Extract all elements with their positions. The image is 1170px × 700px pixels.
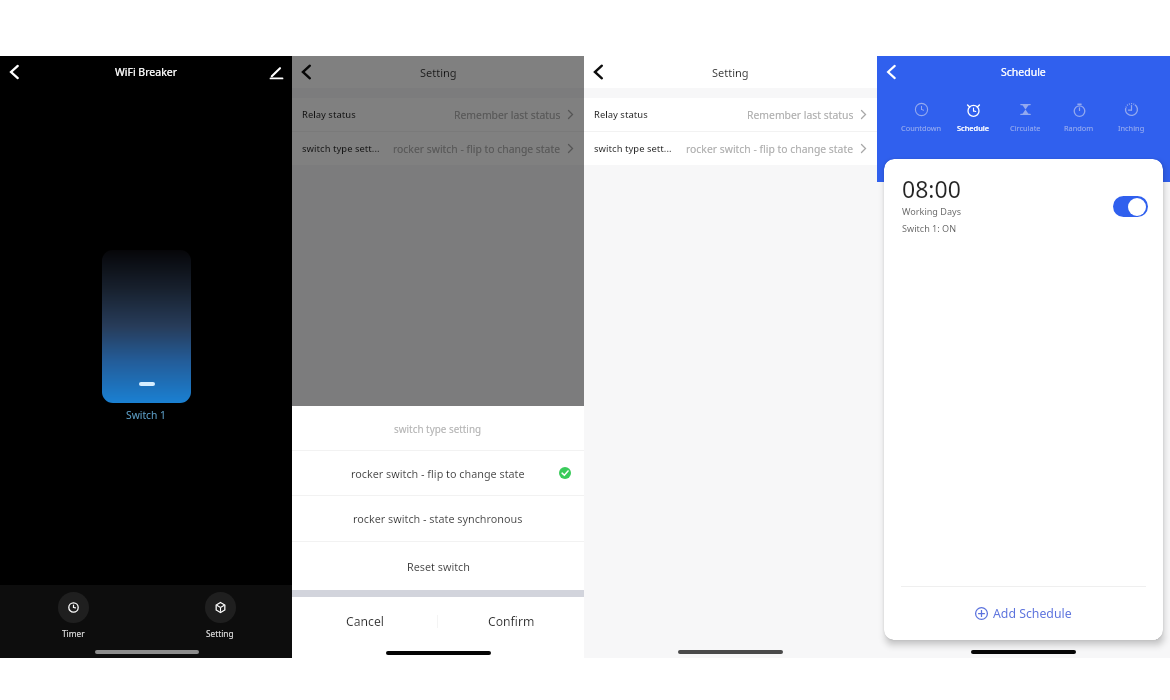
button[interactable]: Back [292,56,326,88]
button[interactable]: Circulate [1009,100,1042,133]
button[interactable]: Add Schedule [884,587,1163,640]
staticText: Remember last status [747,108,854,122]
button[interactable]: Timer [44,591,102,640]
button[interactable]: Back [0,56,34,88]
staticText: Random [1064,123,1094,133]
staticText: Relay status [594,108,648,121]
staticText: Setting [712,65,749,80]
staticText: Switch 1 [126,408,166,422]
staticText: Working Days [902,205,962,217]
button[interactable]: Schedule enabled toggle [1113,196,1148,217]
button[interactable]: Random [1063,100,1095,133]
staticText: Setting [206,628,234,639]
staticText: Confirm [488,613,535,630]
staticText: rocker switch - state synchronous [353,511,523,526]
button[interactable]: Setting [191,591,249,640]
staticText: Remember last status [454,108,561,122]
staticText: Switch 1: ON [902,222,957,234]
button[interactable]: Cancel [292,597,437,645]
button[interactable]: Countdown [900,100,943,133]
button[interactable]: Confirm [438,597,584,645]
staticText: Timer [62,628,85,639]
staticText: Schedule [1001,65,1046,79]
button[interactable]: Reset switch [292,542,584,590]
staticText: WiFi Breaker [115,65,177,79]
button[interactable]: Relay status [292,98,584,131]
button[interactable]: Schedule [956,100,991,133]
button[interactable]: switch type sett... [292,132,584,165]
staticText: Reset switch [407,559,470,574]
staticText: Relay status [302,108,356,121]
staticText: Add Schedule [993,605,1072,622]
button[interactable]: Back [584,56,618,88]
staticText: Circulate [1010,123,1041,133]
staticText: switch type setting [394,422,482,435]
button[interactable]: Back [877,56,911,88]
staticText: switch type sett... [594,142,672,155]
staticText: Cancel [346,613,384,630]
staticText: Countdown [901,123,942,133]
button[interactable]: Switch 1 toggle [102,250,191,403]
staticText: 08:00 [902,173,961,204]
button[interactable]: 08:00 [884,159,1163,245]
staticText: rocker switch - flip to change state [351,466,525,481]
button[interactable]: rocker switch - state synchronous [292,496,584,541]
staticText: Schedule [957,123,990,133]
staticText: Setting [420,65,457,80]
staticText: rocker switch - flip to change state [393,142,561,156]
button[interactable]: rocker switch - flip to change state [292,451,584,495]
staticText: rocker switch - flip to change state [686,142,854,156]
button[interactable]: switch type sett... [584,132,877,165]
button[interactable]: Edit [258,56,292,88]
staticText: Inching [1118,123,1145,133]
button[interactable]: Relay status [584,98,877,131]
button[interactable]: Inching [1117,100,1146,133]
staticText: switch type sett... [302,142,380,155]
